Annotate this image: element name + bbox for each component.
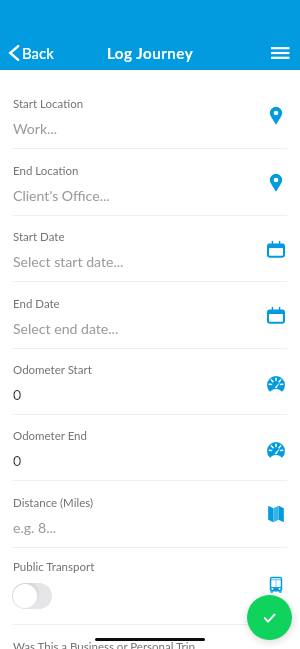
button[interactable]: Public Transport <box>0 547 300 624</box>
button[interactable]: Start Location <box>0 82 300 148</box>
staticText: Work... <box>13 120 58 137</box>
staticText: Start Location <box>13 97 84 111</box>
staticText: 0 <box>13 452 22 469</box>
staticText: Was This a Business or Personal Trip <box>13 640 195 649</box>
button[interactable]: Back <box>9 44 54 62</box>
staticText: Log Journey <box>107 44 194 62</box>
button[interactable]: Odometer End <box>0 414 300 480</box>
staticText: Public Transport <box>13 560 95 574</box>
staticText: Client's Office... <box>13 187 110 204</box>
button[interactable]: End Location <box>0 149 300 215</box>
staticText: Odometer End <box>13 429 87 443</box>
button[interactable]: Start Date <box>0 215 300 281</box>
staticText: Start Date <box>13 230 65 244</box>
staticText: End Location <box>13 164 79 178</box>
staticText: Distance (Miles) <box>13 496 94 510</box>
button[interactable]: Distance (Miles) <box>0 481 300 547</box>
button[interactable]: Public Transport toggle <box>12 583 52 609</box>
button[interactable]: Save journey <box>247 595 292 640</box>
button[interactable]: Menu <box>269 45 291 61</box>
staticText: Odometer Start <box>13 363 92 377</box>
staticText: Select start date... <box>13 253 124 270</box>
button[interactable]: Odometer Start <box>0 348 300 414</box>
staticText: 0 <box>13 386 22 403</box>
staticText: Select end date... <box>13 320 119 337</box>
staticText: e.g. 8... <box>13 519 57 536</box>
staticText: Back <box>22 44 54 62</box>
staticText: End Date <box>13 297 60 311</box>
button[interactable]: End Date <box>0 282 300 348</box>
